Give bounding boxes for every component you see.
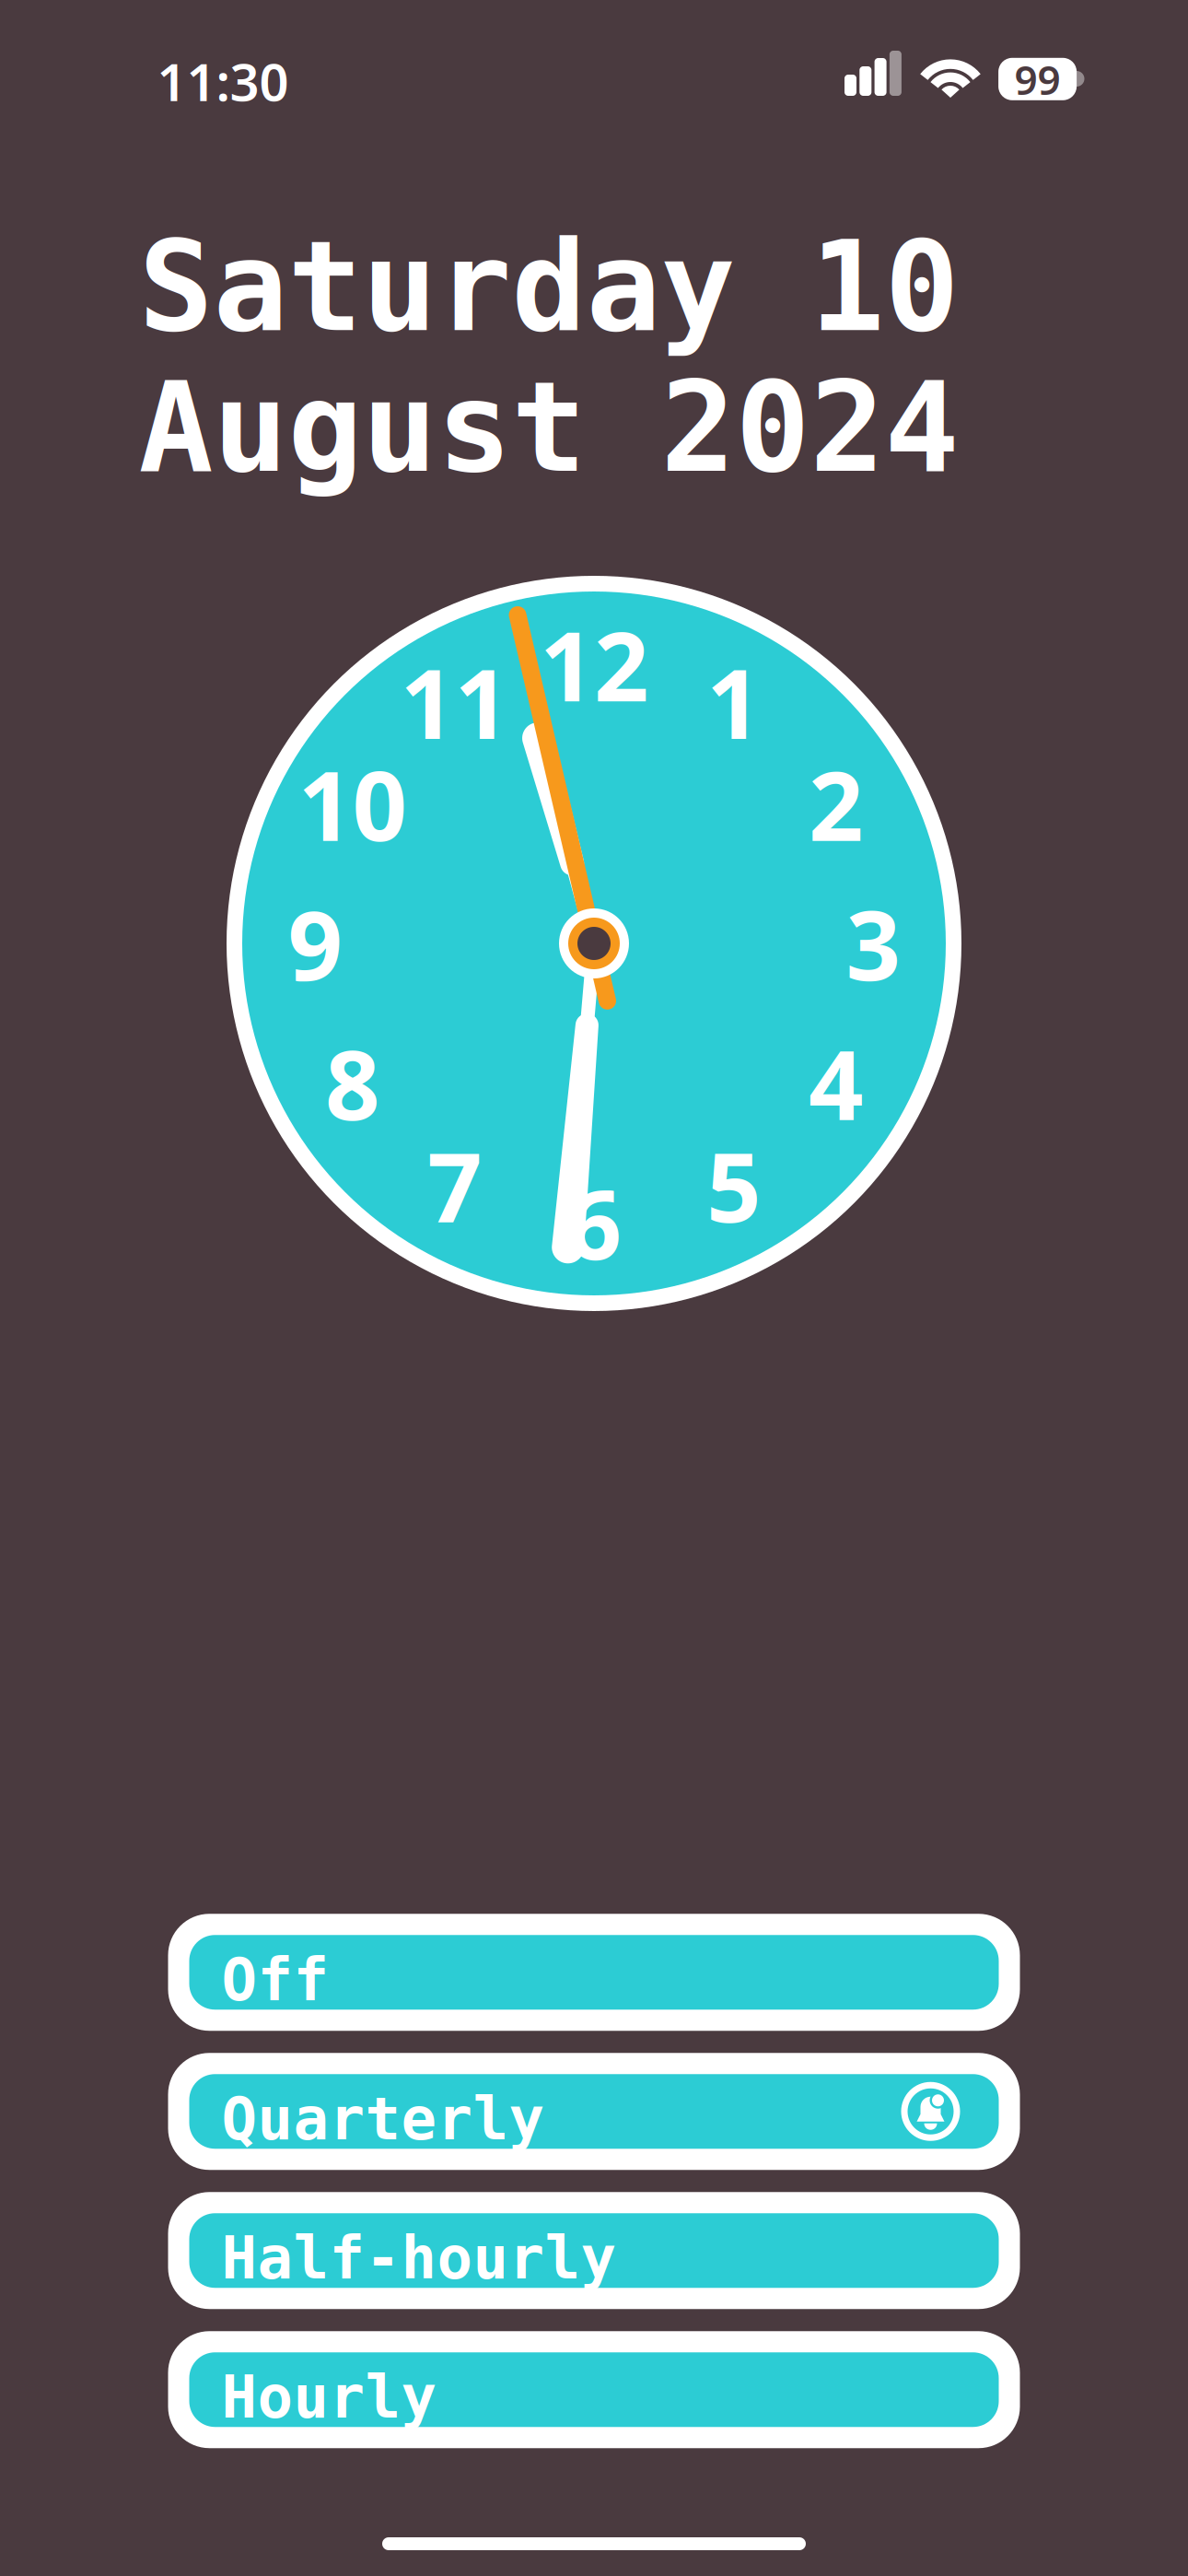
- button[interactable]: Off: [168, 1914, 1020, 2031]
- staticText: Off: [221, 1946, 329, 2013]
- button[interactable]: Hourly: [168, 2331, 1020, 2448]
- button[interactable]: Quarterly: [168, 2053, 1020, 2170]
- button[interactable]: Half-hourly: [168, 2192, 1020, 2309]
- staticText: 7: [427, 1122, 482, 1249]
- staticText: Quarterly: [221, 2085, 545, 2152]
- staticText: 4: [808, 1019, 863, 1147]
- staticText: 10: [298, 740, 407, 867]
- staticText: 3: [846, 880, 900, 1007]
- staticText: August 2024: [139, 357, 959, 498]
- staticText: 12: [540, 601, 648, 728]
- staticText: 11:30: [157, 47, 289, 115]
- staticText: 11: [400, 638, 509, 765]
- staticText: 1: [706, 638, 761, 765]
- staticText: 2: [808, 740, 863, 867]
- staticText: 5: [706, 1122, 761, 1249]
- staticText: Half-hourly: [221, 2224, 617, 2291]
- staticText: 9: [288, 880, 342, 1007]
- staticText: Hourly: [221, 2364, 437, 2430]
- staticText: Saturday 10: [139, 217, 959, 357]
- staticText: 8: [325, 1019, 380, 1147]
- staticText: 99: [1014, 52, 1061, 106]
- staticText: 6: [567, 1159, 621, 1286]
